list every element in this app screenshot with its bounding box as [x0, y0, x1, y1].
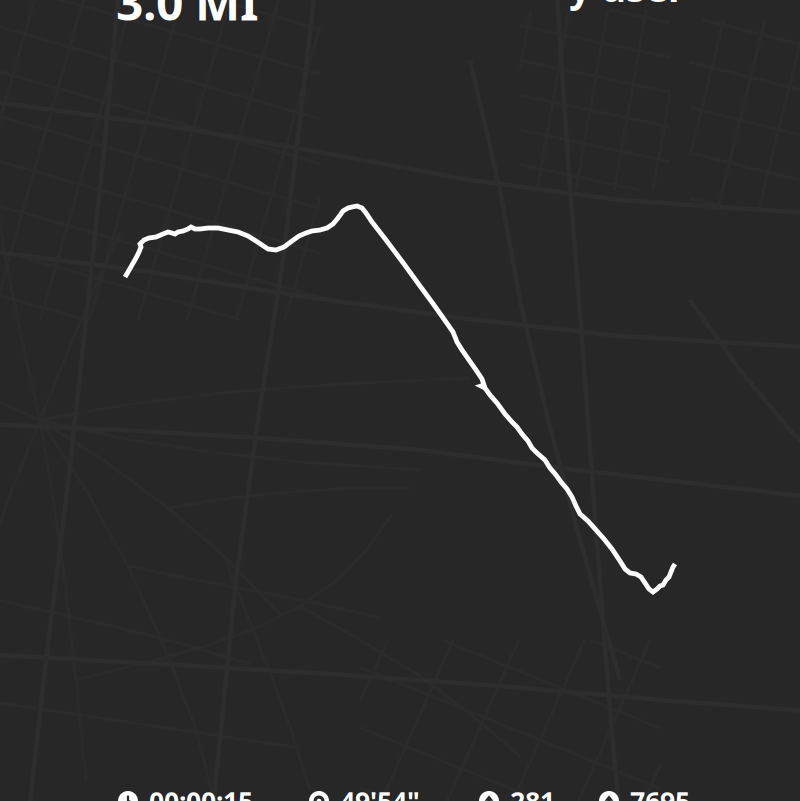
staticText: 3.0 MI [116, 0, 259, 34]
button[interactable]: 7695 [599, 783, 799, 801]
staticText: 7695 [630, 783, 690, 801]
button[interactable]: 49'54" [309, 783, 509, 801]
button[interactable]: y user [485, 0, 685, 13]
button[interactable]: 3.0 MI [116, 0, 316, 34]
staticText: y user [569, 0, 685, 13]
staticText: 49'54" [340, 783, 420, 801]
staticText: 00:00:15 [149, 783, 253, 801]
button[interactable]: 00:00:15 [118, 783, 318, 801]
button[interactable]: 281 [479, 783, 679, 801]
button[interactable]: Route map [0, 0, 800, 801]
staticText: 281 [510, 783, 555, 801]
